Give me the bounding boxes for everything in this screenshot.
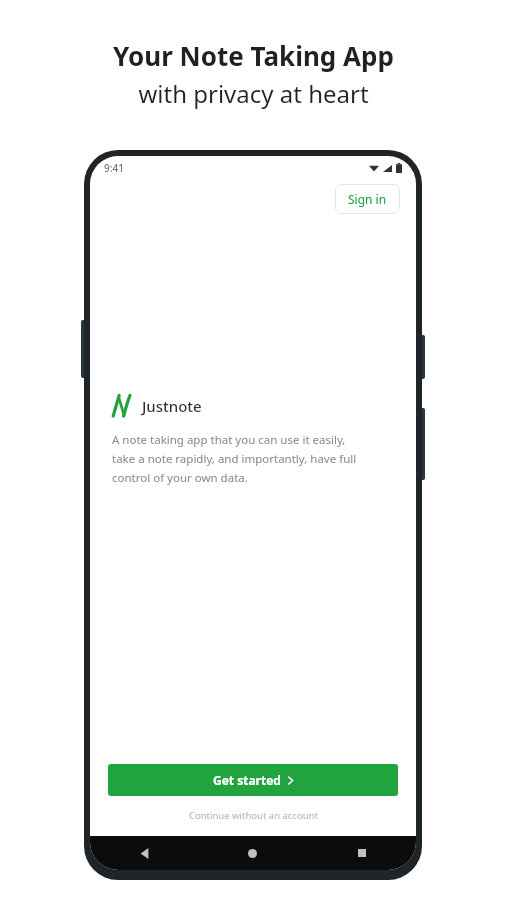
staticText: Get started	[213, 772, 281, 788]
staticText: Sign in	[348, 191, 387, 207]
button[interactable]: Get started	[108, 764, 398, 796]
staticText: 9:41	[104, 161, 124, 175]
staticText: Your Note Taking App	[113, 38, 394, 73]
button[interactable]: Sign in	[335, 184, 400, 214]
button[interactable]: Recent apps	[307, 836, 416, 870]
button[interactable]: Continue without an account	[90, 809, 416, 822]
staticText: A note taking app that you can use it ea…	[112, 432, 357, 485]
staticText: Justnote	[142, 396, 202, 416]
staticText: with privacy at heart	[138, 77, 369, 110]
staticText: Continue without an account	[189, 809, 318, 822]
button[interactable]: Back	[90, 836, 198, 870]
button[interactable]: Home	[198, 836, 307, 870]
